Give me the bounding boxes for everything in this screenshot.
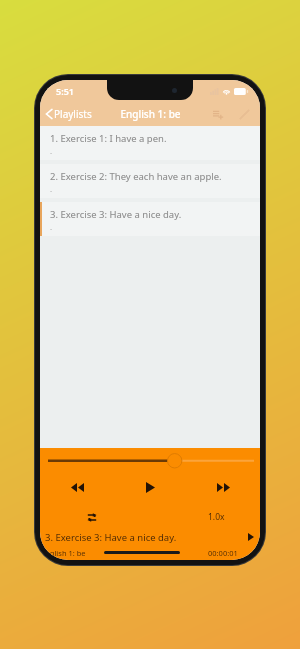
staticText: 1. Exercise 1: I have a pen.: [50, 132, 167, 145]
button[interactable]: Rewind: [40, 470, 114, 504]
staticText: 2. Exercise 2: They each have an apple.: [50, 170, 222, 183]
staticText: English 1: be: [120, 107, 181, 121]
button[interactable]: 1.0x: [205, 509, 228, 525]
staticText: Playlists: [54, 107, 92, 121]
button[interactable]: Add to playlist: [209, 106, 227, 124]
staticText: -: [50, 224, 53, 234]
staticText: English 1: be: [41, 548, 86, 558]
button[interactable]: Seek: [40, 448, 260, 470]
staticText: 1.0x: [208, 511, 225, 523]
staticText: 5:51: [56, 85, 74, 97]
button[interactable]: Fast forward: [187, 470, 260, 504]
button[interactable]: 2. Exercise 2: They each have an apple.: [40, 164, 260, 198]
button[interactable]: 3. Exercise 3: Have a nice day.: [40, 202, 260, 236]
staticText: 3. Exercise 3: Have a nice day.: [50, 208, 182, 221]
button[interactable]: 1. Exercise 1: I have a pen.: [40, 126, 260, 160]
staticText: 00:00:01: [208, 548, 238, 558]
button[interactable]: 3. Exercise 3: Have a nice day.: [40, 530, 260, 560]
button[interactable]: Repeat: [84, 510, 100, 525]
button[interactable]: Play: [114, 470, 187, 504]
button[interactable]: Play current: [242, 531, 260, 543]
button[interactable]: Playlists: [40, 105, 98, 123]
staticText: -: [50, 186, 53, 196]
staticText: -: [50, 148, 53, 158]
staticText: 3. Exercise 3: Have a nice day.: [45, 531, 242, 544]
